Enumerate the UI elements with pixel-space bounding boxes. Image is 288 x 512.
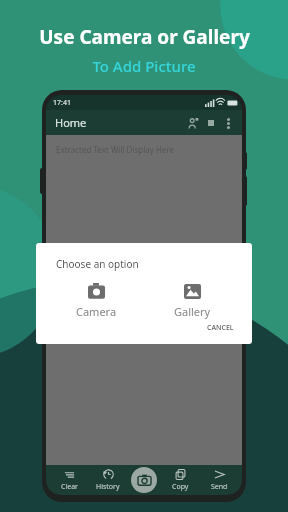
staticText: Use Camera or Gallery [39, 24, 250, 50]
staticText: History [96, 482, 120, 492]
staticText: To Add Picture [92, 56, 196, 76]
staticText: Gallery [174, 304, 211, 319]
button[interactable]: More options [220, 115, 236, 131]
button[interactable]: Copy [163, 469, 197, 492]
button[interactable]: Camera [48, 283, 144, 319]
button[interactable]: CANCEL [203, 319, 238, 335]
button[interactable]: Gallery [144, 283, 240, 319]
button[interactable]: Stop [202, 114, 220, 132]
button[interactable]: Send [202, 469, 236, 492]
button[interactable]: Account [184, 114, 202, 132]
staticText: Choose an option [56, 257, 139, 271]
staticText: 17:41 [53, 98, 71, 108]
staticText: Camera [76, 304, 117, 319]
staticText: Clear [61, 482, 78, 492]
button[interactable]: Camera [131, 467, 157, 493]
staticText: CANCEL [207, 323, 234, 331]
button[interactable]: Clear [52, 469, 86, 492]
staticText: Send [211, 482, 228, 492]
button[interactable]: History [91, 469, 125, 492]
staticText: Extracted Text Will Display Here [56, 144, 175, 155]
staticText: Copy [172, 482, 189, 492]
staticText: Home [55, 115, 87, 130]
